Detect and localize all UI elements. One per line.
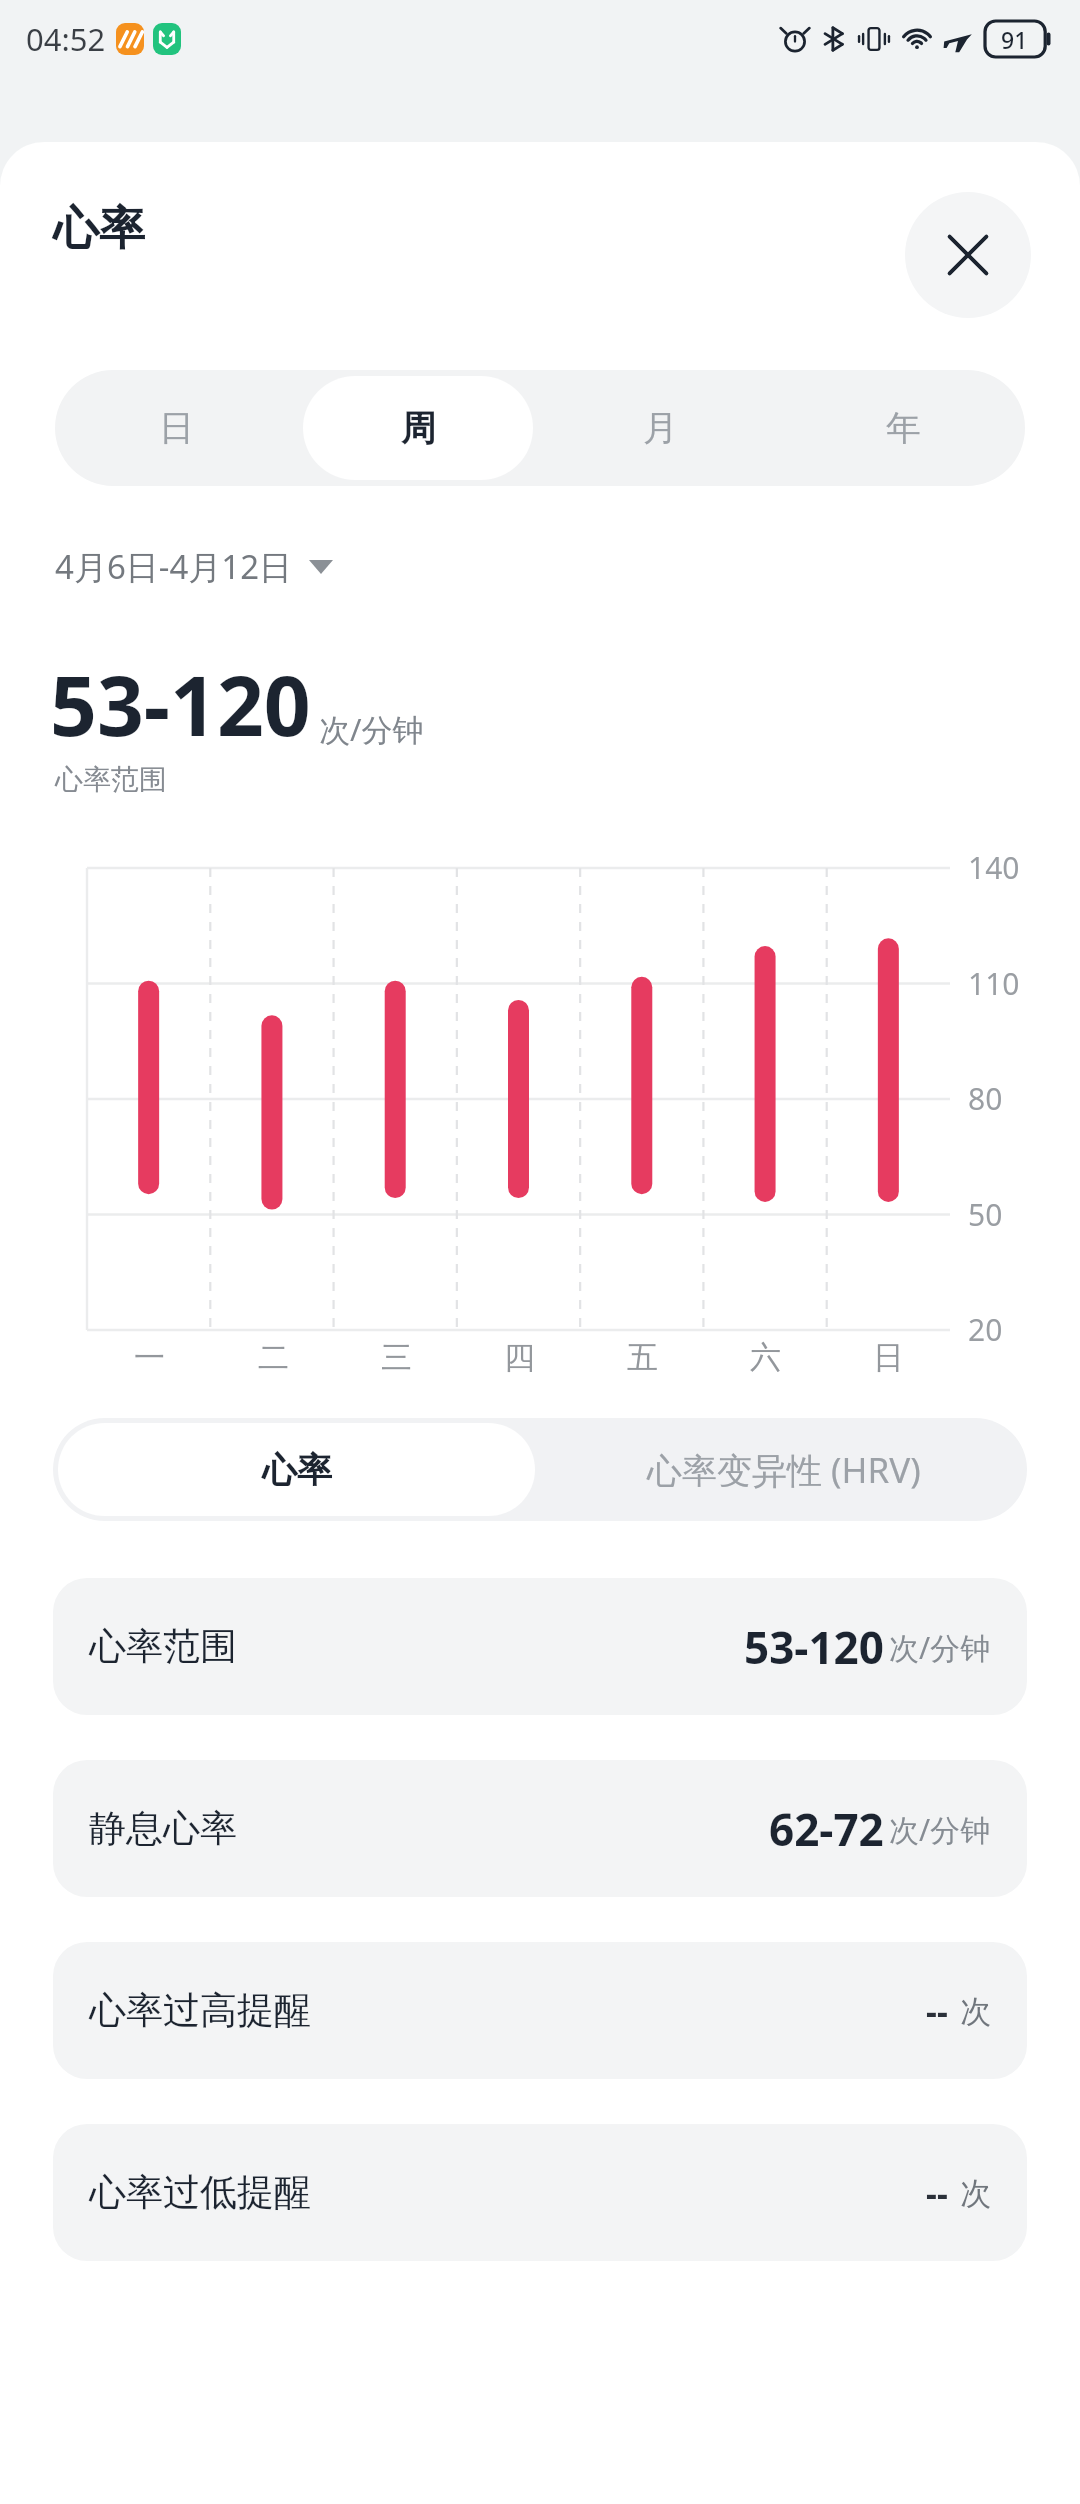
staticText: 53-120 bbox=[50, 648, 311, 760]
staticText: 二 bbox=[258, 1338, 289, 1377]
button[interactable]: 心率变异性 (HRV) bbox=[540, 1418, 1027, 1521]
button[interactable]: 年 bbox=[788, 376, 1019, 480]
staticText: -- bbox=[926, 1988, 948, 2034]
staticText: 三 bbox=[381, 1338, 412, 1377]
button[interactable]: 静息心率 bbox=[53, 1760, 1027, 1897]
staticText: 53-120 bbox=[744, 1617, 884, 1677]
staticText: 六 bbox=[750, 1338, 781, 1377]
staticText: 心率过高提醒 bbox=[89, 1987, 311, 2034]
staticText: 心率 bbox=[53, 200, 145, 258]
staticText: 周 bbox=[401, 406, 436, 450]
staticText: 次 bbox=[960, 1992, 991, 2031]
button[interactable]: 心率过高提醒 bbox=[53, 1942, 1027, 2079]
staticText: 日 bbox=[873, 1338, 904, 1377]
staticText: 50 bbox=[968, 1194, 1003, 1235]
button[interactable]: 4月6日-4月12日 bbox=[55, 544, 333, 589]
staticText: 心率范围 bbox=[89, 1623, 237, 1670]
staticText: 91 bbox=[1001, 24, 1028, 55]
staticText: 年 bbox=[886, 406, 921, 450]
staticText: 62-72 bbox=[769, 1799, 884, 1859]
button[interactable]: 心率 bbox=[58, 1423, 535, 1516]
staticText: -- bbox=[926, 2170, 948, 2216]
staticText: 04:52 bbox=[26, 18, 106, 60]
staticText: 日 bbox=[159, 406, 194, 450]
staticText: 110 bbox=[968, 963, 1020, 1004]
button[interactable]: 月 bbox=[545, 376, 776, 480]
button[interactable]: 周 bbox=[303, 376, 533, 480]
staticText: 80 bbox=[968, 1078, 1003, 1119]
staticText: 月 bbox=[643, 406, 678, 450]
button[interactable]: 日 bbox=[61, 376, 291, 480]
staticText: 心率 bbox=[262, 1448, 332, 1492]
staticText: 四 bbox=[504, 1338, 535, 1377]
button[interactable]: 心率过低提醒 bbox=[53, 2124, 1027, 2261]
staticText: 静息心率 bbox=[89, 1805, 237, 1852]
staticText: 次/分钟 bbox=[889, 1809, 991, 1850]
staticText: 五 bbox=[627, 1338, 658, 1377]
staticText: 心率范围 bbox=[55, 762, 167, 797]
staticText: 次/分钟 bbox=[319, 708, 424, 750]
button[interactable]: 心率范围 bbox=[53, 1578, 1027, 1715]
staticText: 20 bbox=[968, 1309, 1003, 1350]
button[interactable]: 关闭 bbox=[905, 192, 1031, 318]
staticText: 次/分钟 bbox=[889, 1627, 991, 1668]
staticText: 次 bbox=[960, 2174, 991, 2213]
staticText: 4月6日-4月12日 bbox=[55, 544, 293, 589]
staticText: 心率变异性 (HRV) bbox=[647, 1446, 921, 1494]
staticText: 一 bbox=[134, 1338, 165, 1377]
staticText: 心率过低提醒 bbox=[89, 2169, 311, 2216]
staticText: 140 bbox=[968, 847, 1020, 888]
